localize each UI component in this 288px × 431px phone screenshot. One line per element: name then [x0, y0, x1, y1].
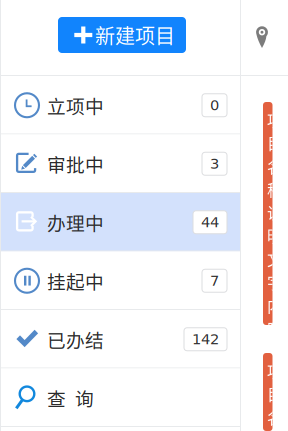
- button[interactable]: 办理中: [0, 193, 241, 251]
- button[interactable]: 已办结: [0, 310, 241, 368]
- staticText: 项目名称说明文字内容情况: [267, 108, 283, 386]
- staticText: 办理中: [47, 209, 104, 236]
- staticText: 立项中: [47, 92, 104, 119]
- staticText: 0: [210, 97, 219, 114]
- button[interactable]: 挂起中: [0, 251, 241, 310]
- staticText: 44: [201, 214, 219, 231]
- staticText: 项目名称说明: [267, 359, 283, 431]
- button[interactable]: 查 询: [0, 368, 241, 427]
- staticText: 142: [192, 331, 219, 348]
- staticText: 7: [210, 272, 219, 289]
- staticText: 新建项目: [95, 20, 175, 49]
- staticText: 3: [210, 155, 219, 172]
- staticText: 审批中: [47, 150, 104, 177]
- button[interactable]: 新建项目: [58, 17, 186, 53]
- button[interactable]: 审批中: [0, 134, 241, 193]
- staticText: 查 询: [47, 384, 94, 411]
- button[interactable]: 立项中: [0, 76, 241, 134]
- staticText: 已办结: [47, 326, 104, 353]
- staticText: 挂起中: [47, 267, 104, 294]
